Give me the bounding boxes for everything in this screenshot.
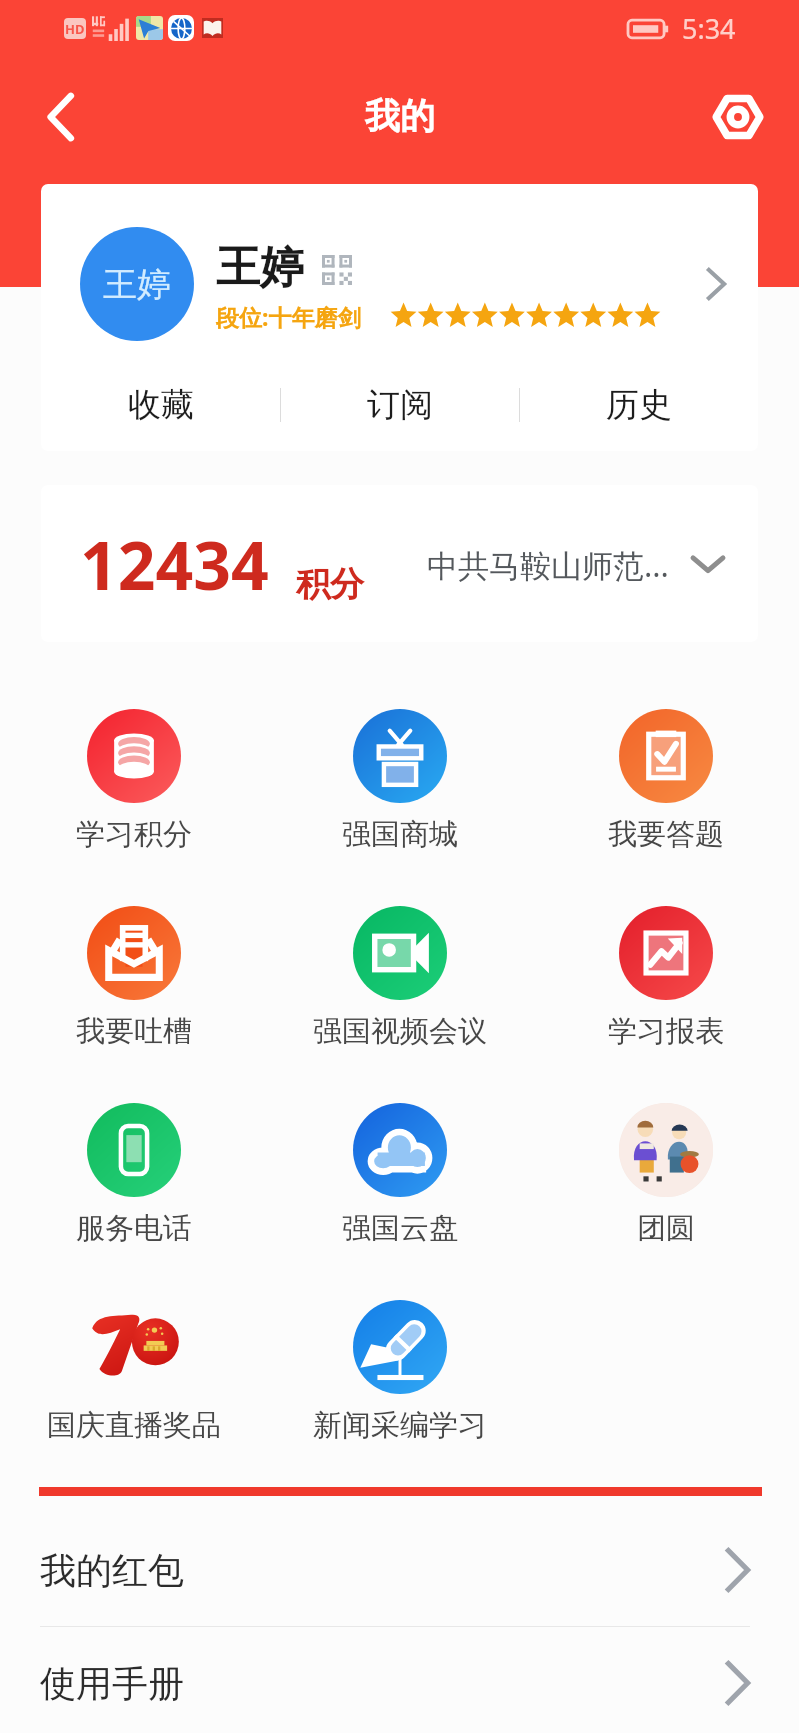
- button[interactable]: 历史: [520, 359, 758, 451]
- staticText: 国庆直播奖品: [47, 1407, 221, 1444]
- staticText: HD: [65, 20, 85, 38]
- button[interactable]: 国庆直播奖品: [0, 1283, 267, 1480]
- staticText: 积分: [296, 563, 364, 606]
- button[interactable]: 团圆: [533, 1086, 799, 1283]
- button[interactable]: 新闻采编学习: [267, 1283, 533, 1480]
- button[interactable]: 我要答题: [533, 692, 799, 889]
- staticText: 王婷: [216, 240, 304, 295]
- button[interactable]: 强国云盘: [267, 1086, 533, 1283]
- button[interactable]: 学习报表: [533, 889, 799, 1086]
- staticText: 强国视频会议: [313, 1013, 487, 1050]
- staticText: 学习积分: [76, 816, 192, 853]
- button[interactable]: 服务电话: [0, 1086, 267, 1283]
- button[interactable]: 使用手册: [40, 1627, 750, 1733]
- staticText: 使用手册: [40, 1661, 184, 1706]
- button[interactable]: 订阅: [281, 359, 519, 451]
- staticText: 强国云盘: [342, 1210, 458, 1247]
- staticText: 收藏: [128, 384, 194, 426]
- staticText: 王婷: [103, 263, 171, 306]
- staticText: 新闻采编学习: [313, 1407, 487, 1444]
- button[interactable]: Settings: [709, 88, 767, 146]
- button[interactable]: 王婷: [41, 184, 758, 359]
- button[interactable]: 强国视频会议: [267, 889, 533, 1086]
- button[interactable]: 收藏: [41, 359, 280, 451]
- staticText: 5:34: [682, 10, 736, 47]
- button[interactable]: 我的红包: [40, 1496, 750, 1626]
- staticText: 12434: [80, 519, 269, 609]
- staticText: 我要吐槽: [76, 1013, 192, 1050]
- staticText: 我的红包: [40, 1548, 184, 1593]
- staticText: 我的: [365, 94, 435, 138]
- staticText: 段位:十年磨剑: [216, 301, 361, 332]
- staticText: 中共马鞍山师范...: [427, 544, 669, 586]
- staticText: 强国商城: [342, 816, 458, 853]
- button[interactable]: 12434: [41, 485, 758, 642]
- staticText: 我要答题: [608, 816, 724, 853]
- button[interactable]: 我要吐槽: [0, 889, 267, 1086]
- button[interactable]: 学习积分: [0, 692, 267, 889]
- staticText: 学习报表: [608, 1013, 724, 1050]
- staticText: 历史: [606, 384, 672, 426]
- staticText: 订阅: [367, 384, 433, 426]
- button[interactable]: Back: [32, 88, 90, 146]
- staticText: 服务电话: [76, 1210, 192, 1247]
- button[interactable]: 强国商城: [267, 692, 533, 889]
- staticText: 团圆: [637, 1210, 695, 1247]
